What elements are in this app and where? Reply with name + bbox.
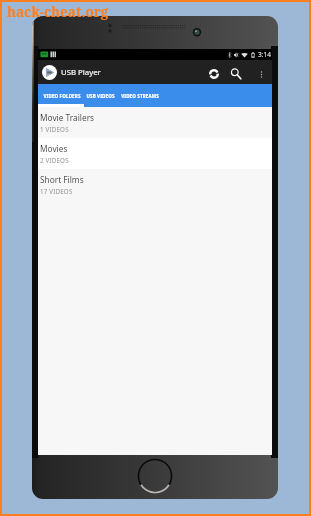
button[interactable]: Movies <box>38 138 272 169</box>
staticText: USB Player <box>61 67 101 78</box>
staticText: 17 VIDEOS <box>40 187 73 195</box>
staticText: hack-cheat.org <box>7 3 109 21</box>
staticText: USB VIDEOS <box>86 93 115 99</box>
button[interactable]: Short Films <box>38 169 272 200</box>
staticText: Movie Trailers <box>40 112 95 123</box>
button[interactable]: USB Player icon <box>42 65 57 80</box>
button[interactable]: More options <box>253 66 269 82</box>
staticText: Short Films <box>40 174 84 185</box>
button[interactable]: Search <box>227 65 245 83</box>
staticText: 3:14 <box>258 50 272 59</box>
button[interactable]: Refresh <box>205 65 223 83</box>
button[interactable]: VIDEO FOLDERS <box>38 84 85 107</box>
button[interactable]: USB VIDEOS <box>85 84 115 107</box>
staticText: VIDEO STREAMS <box>121 93 159 99</box>
staticText: Movies <box>40 143 68 154</box>
staticText: 2 VIDEOS <box>40 156 69 164</box>
staticText: VIDEO FOLDERS <box>43 93 81 99</box>
staticText: 1 VIDEOS <box>40 125 69 133</box>
button[interactable]: VIDEO STREAMS <box>115 84 165 107</box>
button[interactable]: Movie Trailers <box>38 107 272 138</box>
